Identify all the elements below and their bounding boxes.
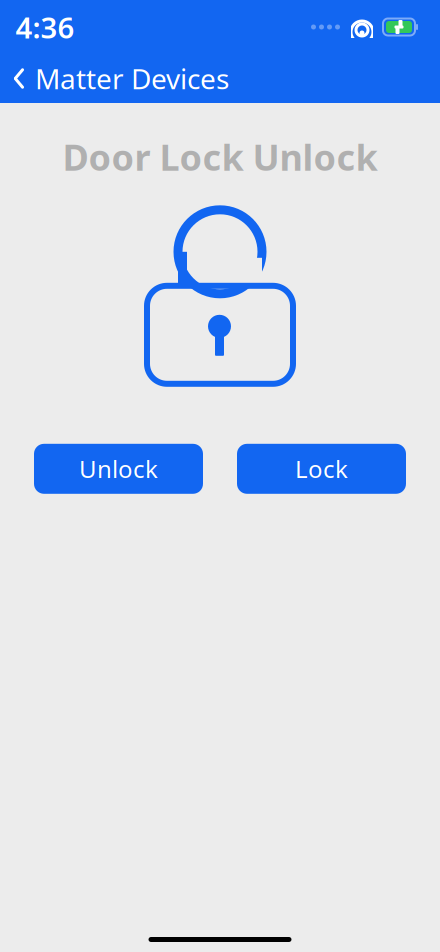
button[interactable]: Matter Devices (0, 54, 243, 103)
staticText: Unlock (79, 453, 158, 485)
staticText: Lock (295, 453, 348, 485)
staticText: Door Lock Unlock (62, 133, 377, 181)
staticText: 4:36 (15, 7, 74, 46)
button[interactable]: Unlock (34, 444, 203, 494)
button[interactable]: Lock (237, 444, 406, 494)
staticText: Matter Devices (35, 60, 229, 97)
